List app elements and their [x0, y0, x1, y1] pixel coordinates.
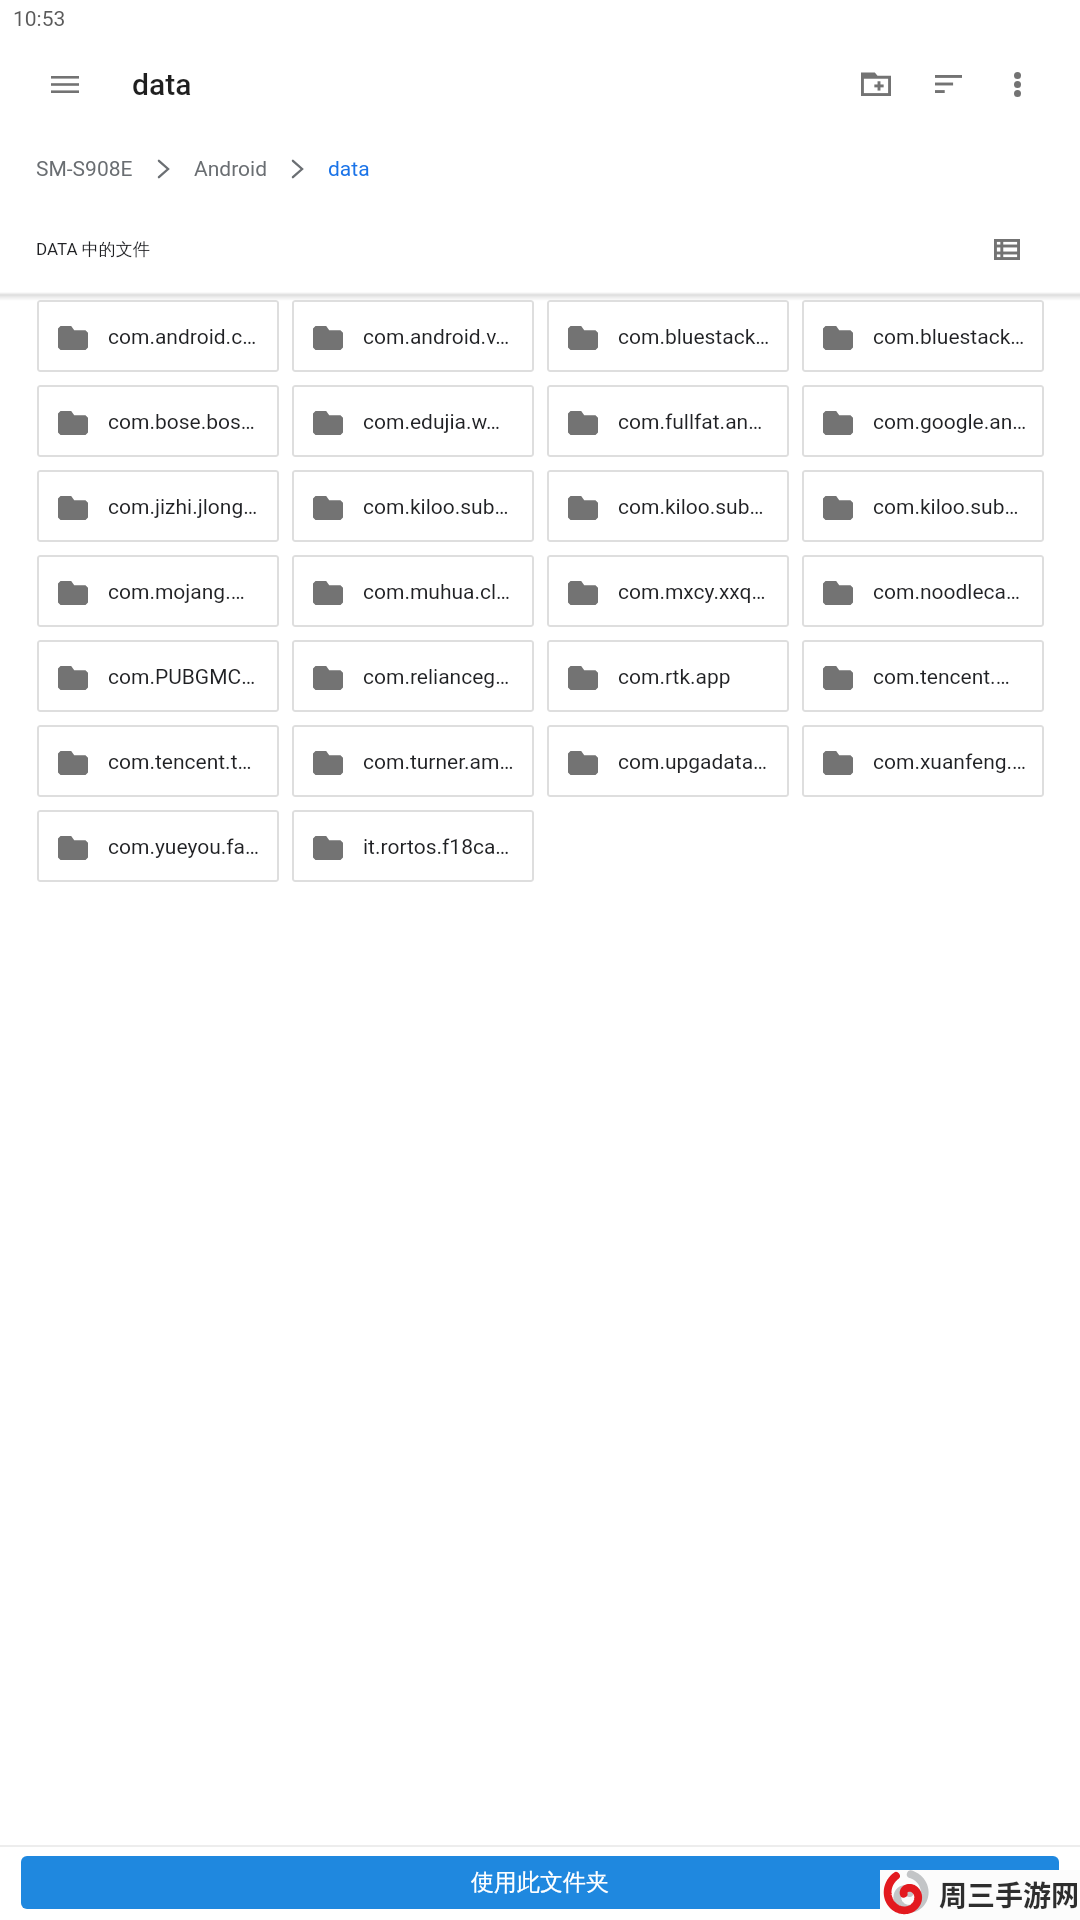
button[interactable]: com.bluestack… [547, 300, 789, 372]
staticText: data [132, 67, 192, 102]
button[interactable]: com.tencent.… [802, 640, 1044, 712]
staticText: com.bluestack… [618, 325, 770, 350]
button[interactable]: com.bose.bos… [37, 385, 279, 457]
button[interactable]: Android [194, 157, 267, 182]
button[interactable]: com.tencent.t… [37, 725, 279, 797]
staticText: com.mojang.… [108, 580, 245, 605]
button[interactable]: com.google.an… [802, 385, 1044, 457]
button[interactable]: com.android.v… [292, 300, 534, 372]
button[interactable]: Switch to list view [979, 221, 1035, 277]
button[interactable]: com.noodleca… [802, 555, 1044, 627]
button[interactable]: it.rortos.f18ca… [292, 810, 534, 882]
button[interactable]: 使用此文件夹 [21, 1856, 1059, 1909]
staticText: com.muhua.cl… [363, 580, 511, 605]
staticText: com.edujia.w… [363, 410, 501, 435]
button[interactable]: com.fullfat.an… [547, 385, 789, 457]
staticText: 10:53 [13, 7, 66, 32]
button[interactable]: com.kiloo.sub… [802, 470, 1044, 542]
button[interactable]: New folder [841, 49, 911, 119]
button[interactable]: Menu [29, 48, 101, 120]
staticText: com.google.an… [873, 410, 1027, 435]
staticText: com.noodleca… [873, 580, 1021, 605]
button[interactable]: data [328, 157, 370, 182]
staticText: com.jizhi.jlong… [108, 495, 258, 520]
button[interactable]: com.mojang.… [37, 555, 279, 627]
button[interactable]: com.relianceg… [292, 640, 534, 712]
staticText: com.tencent.t… [108, 750, 252, 775]
staticText: com.kiloo.sub… [873, 495, 1019, 520]
staticText: com.bose.bos… [108, 410, 255, 435]
staticText: 周三手游网 [939, 1874, 1080, 1915]
button[interactable]: com.xuanfeng.… [802, 725, 1044, 797]
button[interactable]: Sort [913, 49, 983, 119]
staticText: com.mxcy.xxq… [618, 580, 766, 605]
button[interactable]: com.turner.am… [292, 725, 534, 797]
button[interactable]: com.kiloo.sub… [292, 470, 534, 542]
staticText: com.android.v… [363, 325, 510, 350]
button[interactable]: com.PUBGMC… [37, 640, 279, 712]
button[interactable]: com.edujia.w… [292, 385, 534, 457]
button[interactable]: com.kiloo.sub… [547, 470, 789, 542]
button[interactable]: More options [982, 49, 1052, 119]
staticText: com.fullfat.an… [618, 410, 763, 435]
button[interactable]: com.yueyou.fa… [37, 810, 279, 882]
button[interactable]: com.upgadata… [547, 725, 789, 797]
button[interactable]: com.rtk.app [547, 640, 789, 712]
staticText: com.android.c… [108, 325, 257, 350]
staticText: com.bluestack… [873, 325, 1025, 350]
staticText: 使用此文件夹 [471, 1868, 609, 1897]
staticText: com.PUBGMC… [108, 665, 256, 690]
button[interactable]: SM-S908E [36, 157, 133, 182]
staticText: com.yueyou.fa… [108, 835, 260, 860]
button[interactable]: com.jizhi.jlong… [37, 470, 279, 542]
staticText: com.relianceg… [363, 665, 510, 690]
staticText: it.rortos.f18ca… [363, 835, 510, 860]
staticText: com.upgadata… [618, 750, 768, 775]
staticText: com.tencent.… [873, 665, 1010, 690]
staticText: com.kiloo.sub… [618, 495, 764, 520]
button[interactable]: com.android.c… [37, 300, 279, 372]
staticText: DATA 中的文件 [36, 239, 150, 260]
button[interactable]: com.bluestack… [802, 300, 1044, 372]
button[interactable]: com.mxcy.xxq… [547, 555, 789, 627]
button[interactable]: com.muhua.cl… [292, 555, 534, 627]
staticText: com.xuanfeng.… [873, 750, 1027, 775]
staticText: com.rtk.app [618, 665, 731, 690]
staticText: com.turner.am… [363, 750, 514, 775]
staticText: com.kiloo.sub… [363, 495, 509, 520]
